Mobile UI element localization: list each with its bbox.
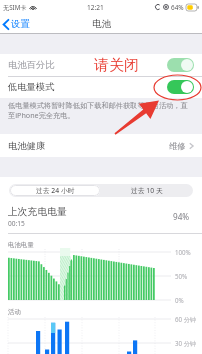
staticText: 12:21 xyxy=(87,3,104,12)
button[interactable]: 电池百分比开关 xyxy=(167,58,194,72)
staticText: 维修 xyxy=(169,141,186,151)
button[interactable]: 设置 xyxy=(0,15,36,33)
staticText: 电池电量 xyxy=(8,241,34,249)
staticText: 请关闭 xyxy=(94,56,139,75)
button[interactable]: 低电量模式 xyxy=(0,76,202,98)
staticText: 过去 10 天 xyxy=(131,186,163,195)
staticText: 64% xyxy=(171,3,184,12)
button[interactable]: 过去 24 小时 xyxy=(10,185,100,196)
staticText: 设置 xyxy=(11,18,30,30)
staticText: 低电量模式 xyxy=(8,81,55,93)
button[interactable]: 低电量模式开关 xyxy=(167,80,194,94)
staticText: 过去 24 小时 xyxy=(36,186,75,195)
button[interactable]: 电池健康 xyxy=(0,134,202,157)
staticText: 00:15 xyxy=(8,219,25,228)
staticText: 上次充电电量 xyxy=(8,206,67,218)
staticText: 电池 xyxy=(92,18,111,30)
button[interactable]: 过去 10 天 xyxy=(101,184,193,197)
staticText: 94% xyxy=(173,211,190,222)
staticText: 30 分钟 xyxy=(175,339,197,347)
staticText: 电池健康 xyxy=(8,140,46,152)
staticText: 100% xyxy=(175,248,191,256)
staticText: 活动 xyxy=(8,308,21,316)
button[interactable]: 电池百分比 xyxy=(0,54,202,76)
staticText: 0% xyxy=(175,296,184,304)
staticText: 无SIM卡 xyxy=(3,3,27,11)
staticText: 低电量模式将暂时降低如下载和邮件获取等后台活动，直 至iPhone完全充电。 xyxy=(8,101,188,120)
staticText: 50% xyxy=(175,272,188,280)
staticText: 60 分钟 xyxy=(175,315,197,323)
staticText: 电池百分比 xyxy=(8,59,55,71)
